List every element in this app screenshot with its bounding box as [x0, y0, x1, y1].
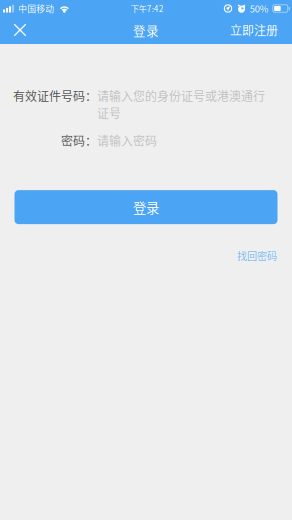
staticText: 下午7:42 [131, 2, 164, 14]
staticText: 密码： [61, 132, 97, 149]
staticText: 找回密码 [237, 248, 277, 263]
staticText: 50% [250, 2, 269, 15]
staticText: 中国移动 [18, 2, 54, 15]
button[interactable]: 关闭 [0, 17, 40, 43]
staticText: 立即注册 [230, 21, 278, 39]
staticText: 请输入您的身份证号或港澳通行证号 [97, 87, 265, 122]
button[interactable]: 找回密码 [237, 248, 277, 263]
staticText: 请输入密码 [97, 132, 157, 149]
staticText: 有效证件号码： [13, 87, 97, 104]
staticText: 登录 [133, 21, 159, 39]
button[interactable]: 立即注册 [230, 17, 292, 43]
button[interactable]: 登录 [14, 190, 277, 224]
staticText: 登录 [133, 197, 159, 217]
